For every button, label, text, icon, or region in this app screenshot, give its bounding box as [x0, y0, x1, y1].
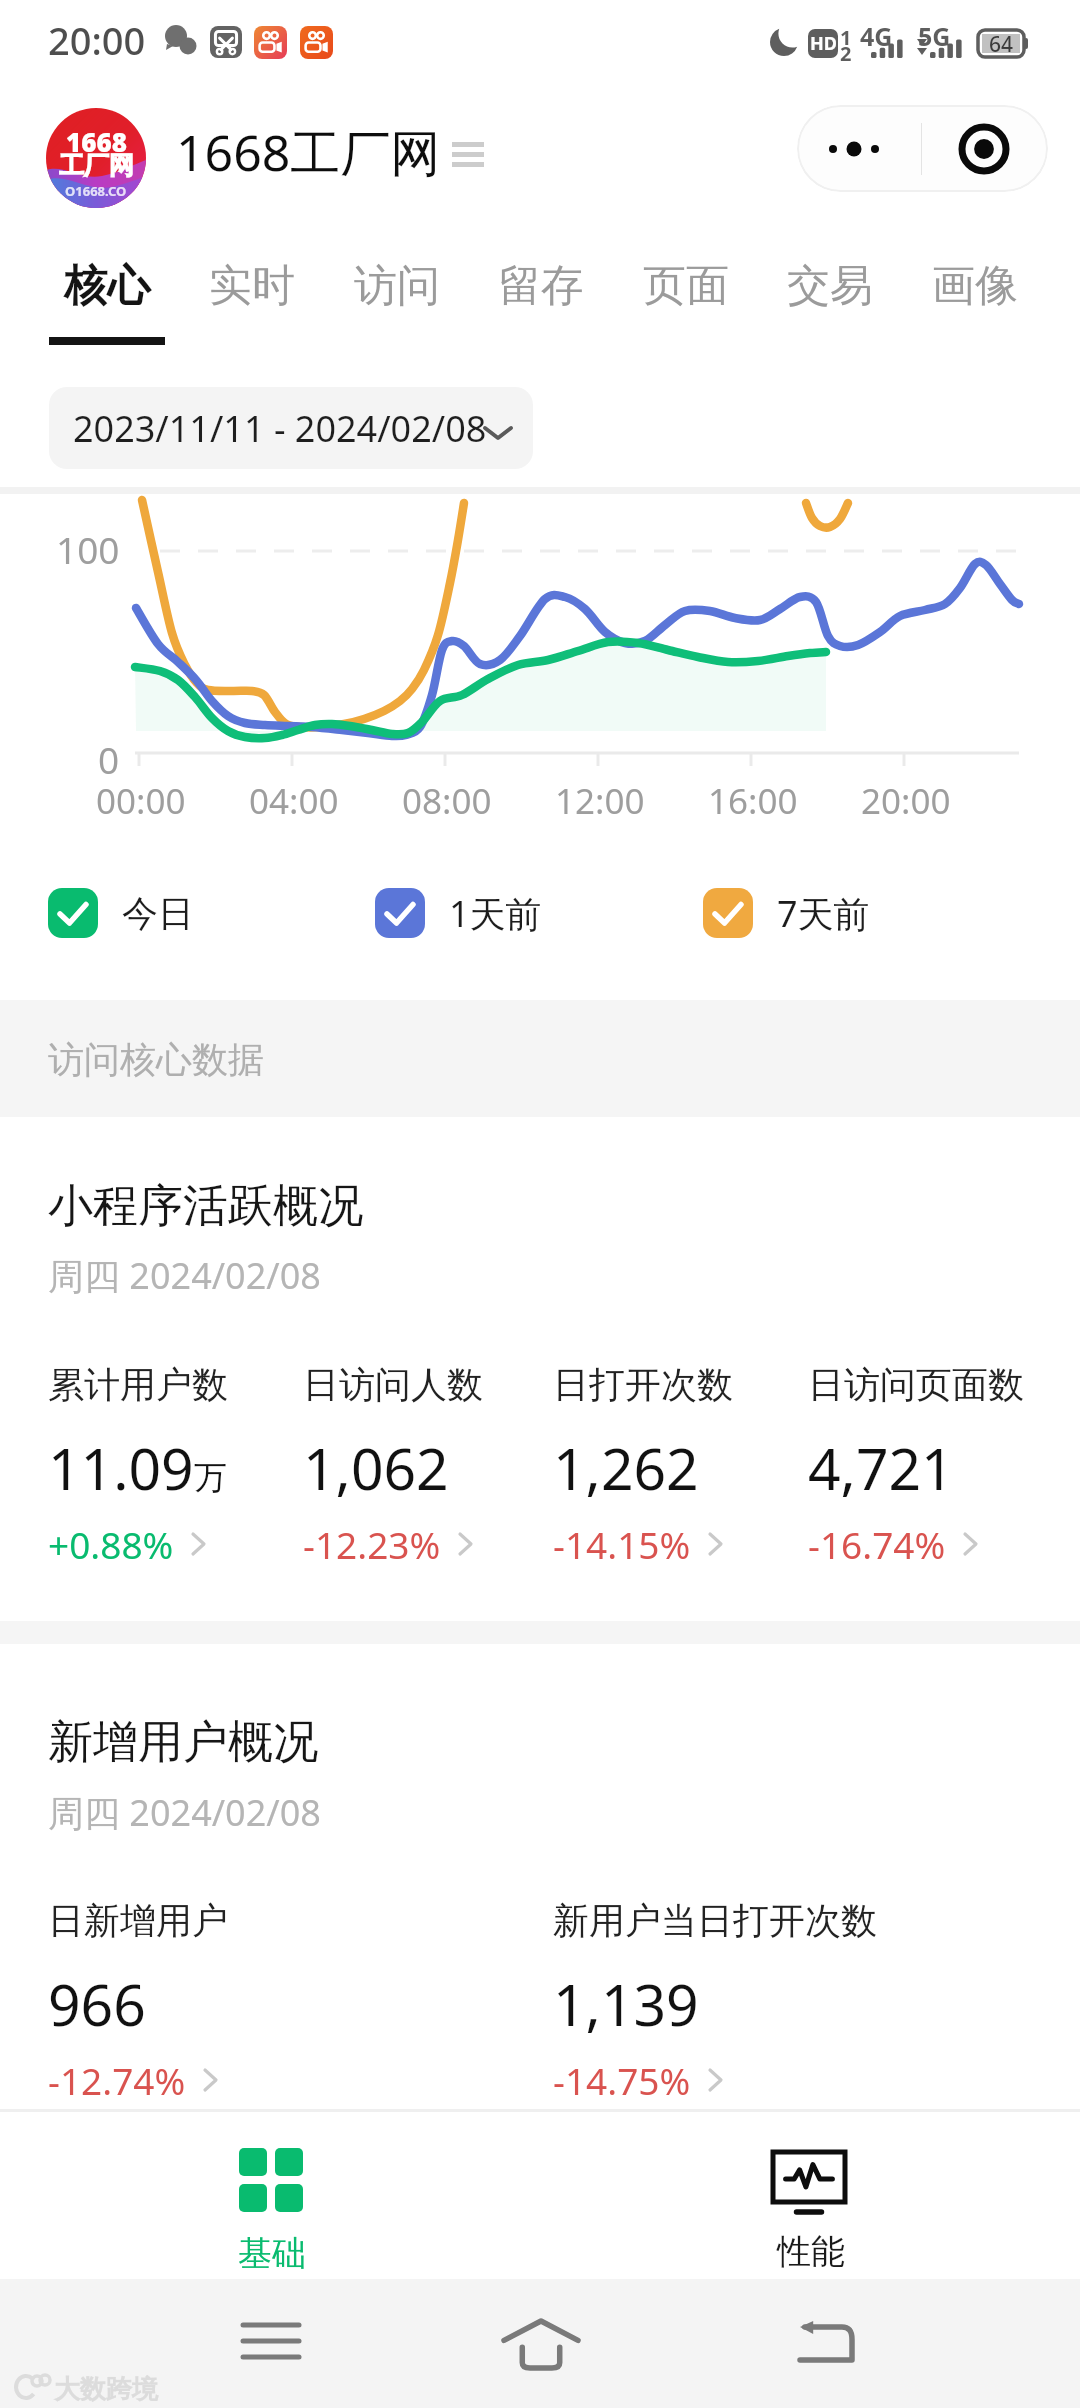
staticText: -14.75%: [553, 2055, 691, 2105]
staticText: 1天前: [449, 889, 542, 938]
staticText: +0.88%: [48, 1519, 174, 1569]
staticText: -16.74%: [808, 1519, 946, 1569]
staticText: 画像: [932, 259, 1018, 313]
staticText: -14.15%: [553, 1519, 691, 1569]
staticText: 16:00: [708, 777, 798, 825]
staticText: 累计用户数: [48, 1362, 228, 1407]
staticText: 访问核心数据: [48, 1037, 264, 1082]
button[interactable]: Back: [720, 2279, 900, 2408]
button[interactable]: 日打开次数: [553, 1362, 805, 1574]
staticText: 日访问页面数: [808, 1362, 1024, 1407]
button[interactable]: 日访问页面数: [808, 1362, 1060, 1574]
staticText: 日打开次数: [553, 1362, 733, 1407]
staticText: 12:00: [555, 777, 645, 825]
staticText: 00:00: [96, 777, 186, 825]
staticText: 留存: [498, 259, 584, 313]
staticText: 1,262: [553, 1429, 699, 1507]
staticText: 20:00: [48, 14, 146, 66]
button[interactable]: 累计用户数: [48, 1362, 300, 1574]
button[interactable]: 留存: [469, 246, 613, 346]
staticText: 1668: [66, 124, 127, 159]
staticText: 1,139: [553, 1965, 699, 2043]
staticText: 新增用户概况: [48, 1714, 318, 1771]
staticText: -12.74%: [48, 2055, 186, 2105]
button[interactable]: 核心: [35, 246, 179, 346]
staticText: 周四 2024/02/08: [48, 1251, 321, 1300]
button[interactable]: More: [797, 105, 921, 192]
staticText: 04:00: [249, 777, 339, 825]
button[interactable]: 1668工厂网: [176, 108, 496, 208]
staticText: 4,721: [808, 1429, 954, 1507]
button[interactable]: Home: [450, 2279, 630, 2408]
staticText: 访问: [354, 259, 440, 313]
staticText: 2023/11/11 - 2024/02/08: [73, 404, 487, 453]
staticText: 今日: [122, 891, 194, 936]
staticText: 核心: [64, 259, 150, 313]
staticText: 页面: [643, 259, 729, 313]
staticText: 5G: [918, 19, 951, 53]
staticText: 7天前: [777, 889, 870, 938]
button[interactable]: 页面: [614, 246, 758, 346]
button[interactable]: 今日: [48, 887, 170, 939]
staticText: 1: [840, 24, 852, 51]
staticText: 日访问人数: [303, 1362, 483, 1407]
button[interactable]: 画像: [903, 246, 1047, 346]
button[interactable]: 日访问人数: [303, 1362, 555, 1574]
button[interactable]: 7天前: [703, 887, 846, 939]
staticText: 日新增用户: [48, 1898, 228, 1943]
button[interactable]: Close mini program: [922, 105, 1046, 192]
staticText: 小程序活跃概况: [48, 1178, 363, 1235]
staticText: 2: [840, 40, 852, 67]
staticText: 20:00: [861, 777, 951, 825]
staticText: 0: [98, 734, 120, 784]
staticText: 08:00: [402, 777, 492, 825]
staticText: 1668工厂网: [176, 118, 441, 186]
staticText: 新用户当日打开次数: [553, 1898, 877, 1943]
staticText: 大数跨境: [54, 2373, 158, 2406]
staticText: 性能: [777, 2230, 845, 2273]
button[interactable]: 日新增用户: [48, 1898, 300, 2110]
staticText: 64: [989, 30, 1014, 57]
button[interactable]: 2023/11/11 - 2024/02/08: [49, 387, 533, 469]
staticText: 万: [194, 1457, 227, 1499]
staticText: 1,062: [303, 1429, 449, 1507]
staticText: 11.09: [48, 1429, 194, 1507]
button[interactable]: 新用户当日打开次数: [553, 1898, 805, 2110]
button[interactable]: 交易: [758, 246, 902, 346]
button[interactable]: 实时: [180, 246, 324, 346]
staticText: 基础: [238, 2232, 306, 2275]
staticText: O1668.CO: [65, 182, 127, 200]
staticText: 100: [56, 524, 120, 574]
button[interactable]: 基础: [150, 2112, 530, 2279]
staticText: 966: [48, 1965, 146, 2043]
staticText: 工厂网: [59, 150, 134, 181]
button[interactable]: 1天前: [375, 887, 518, 939]
staticText: 周四 2024/02/08: [48, 1788, 321, 1837]
button[interactable]: 性能: [620, 2112, 1000, 2279]
button[interactable]: 访问: [325, 246, 469, 346]
staticText: 交易: [787, 259, 873, 313]
staticText: -12.23%: [303, 1519, 441, 1569]
staticText: 实时: [209, 259, 295, 313]
staticText: HD: [810, 31, 837, 56]
staticText: 4G: [860, 19, 893, 53]
button[interactable]: Recent apps: [180, 2279, 360, 2408]
